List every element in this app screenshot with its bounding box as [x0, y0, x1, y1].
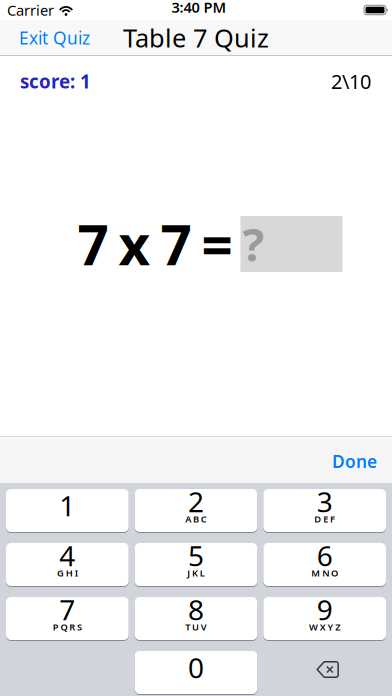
button[interactable]: 5	[135, 543, 257, 586]
staticText: 3	[317, 483, 333, 520]
staticText: Table 7 Quiz	[123, 21, 269, 54]
staticText: 2\10	[331, 68, 371, 95]
staticText: 3:40 PM	[171, 0, 226, 17]
staticText: Exit Quiz	[19, 26, 90, 49]
staticText: 0	[188, 649, 204, 686]
button[interactable]: 4	[6, 543, 129, 586]
staticText: 4	[59, 537, 75, 574]
staticText: 1	[59, 487, 75, 524]
button[interactable]: 7	[6, 597, 129, 640]
staticText: WXYZ	[309, 621, 340, 633]
staticText: score: 1	[20, 69, 91, 94]
staticText: GHI	[57, 567, 78, 579]
staticText: 2	[188, 483, 204, 520]
button[interactable]: 8	[135, 597, 257, 640]
button[interactable]: 1	[6, 489, 129, 532]
staticText: PQRS	[53, 621, 82, 633]
staticText: JKL	[187, 567, 205, 579]
staticText: 9	[317, 591, 333, 628]
staticText: Done	[332, 450, 377, 473]
staticText: 6	[317, 537, 333, 574]
button[interactable]: Delete	[263, 651, 386, 694]
button[interactable]: 0	[135, 651, 257, 694]
staticText: 7 x 7 =	[77, 208, 232, 280]
staticText: 8	[188, 591, 204, 628]
staticText: ABC	[185, 513, 207, 525]
staticText: 7	[59, 591, 75, 628]
button[interactable]: Done	[332, 448, 377, 471]
button[interactable]: 2	[135, 489, 257, 532]
button[interactable]: Exit Quiz	[19, 26, 90, 49]
staticText: DEF	[314, 513, 335, 525]
staticText: 5	[188, 537, 204, 574]
staticText: ?	[242, 214, 264, 274]
staticText: Carrier	[7, 0, 54, 20]
staticText: MNO	[311, 567, 338, 579]
button[interactable]: 6	[263, 543, 386, 586]
button[interactable]: 3	[263, 489, 386, 532]
button[interactable]: 9	[263, 597, 386, 640]
staticText: TUV	[185, 621, 207, 633]
